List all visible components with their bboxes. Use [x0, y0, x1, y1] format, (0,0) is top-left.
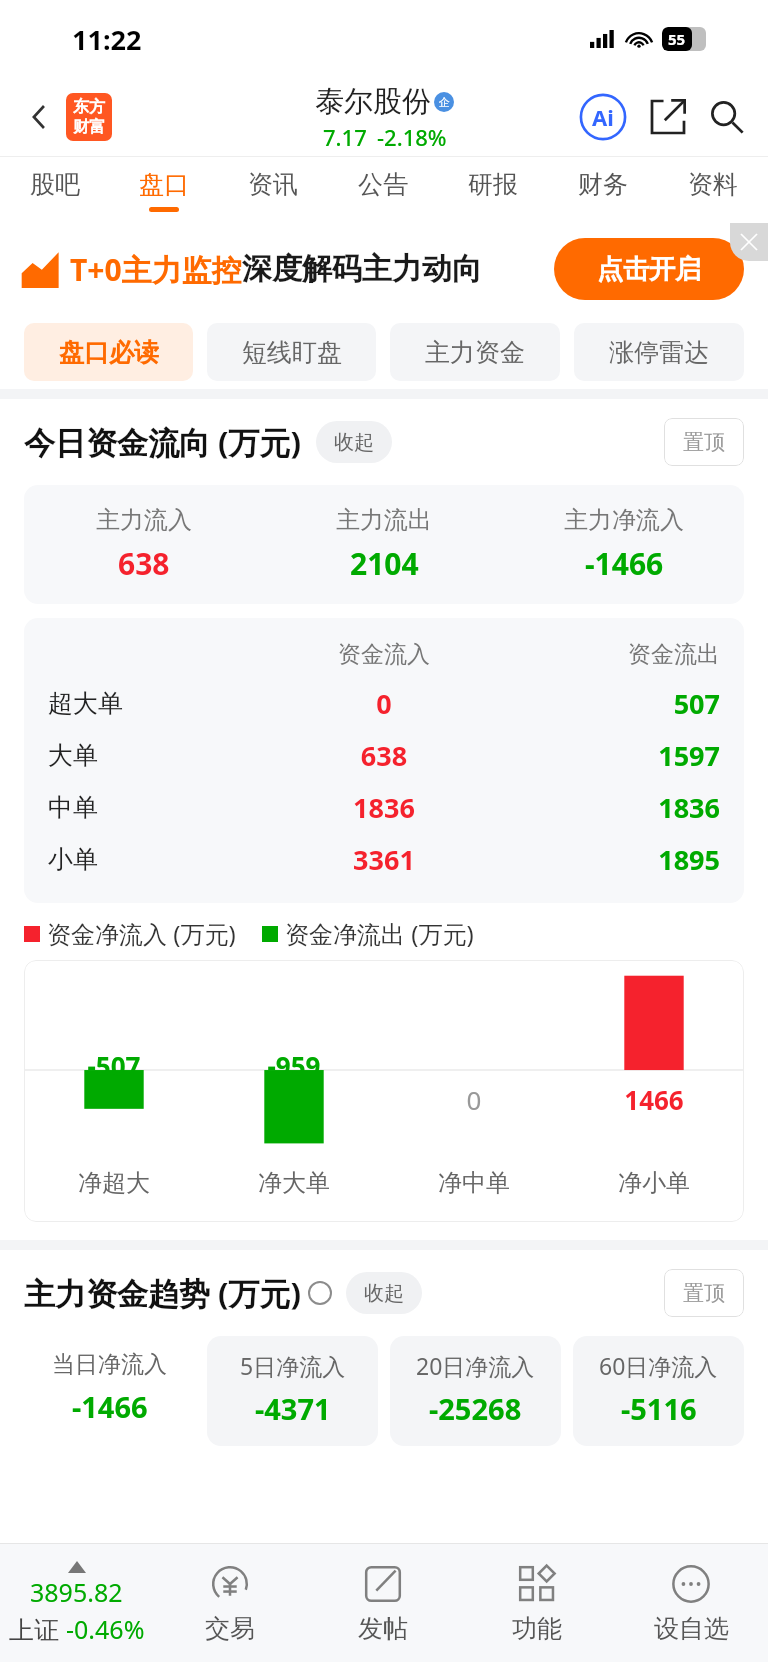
staticText: 1597: [496, 737, 720, 774]
staticText: 置顶: [683, 1280, 725, 1306]
staticText: 3895.82: [30, 1575, 123, 1609]
button[interactable]: 盘口: [109, 157, 218, 223]
button[interactable]: 盘口必读: [24, 323, 193, 381]
staticText: 收起: [334, 430, 374, 455]
button[interactable]: 功能: [460, 1544, 614, 1662]
button[interactable]: Close: [730, 223, 768, 261]
staticText: 资金流入: [272, 640, 496, 669]
staticText: 超大单: [48, 688, 272, 719]
staticText: 2104: [350, 543, 419, 584]
staticText: 1836: [272, 789, 496, 826]
staticText: 收起: [364, 1281, 404, 1306]
staticText: 资讯: [248, 169, 298, 200]
staticText: 今日资金流向 (万元): [24, 421, 302, 463]
staticText: -1466: [72, 1387, 148, 1426]
button[interactable]: Search: [702, 92, 752, 142]
button[interactable]: 点击开启: [554, 238, 744, 300]
staticText: 11:22: [72, 21, 142, 58]
staticText: 研报: [468, 169, 518, 200]
staticText: 上证: [9, 1612, 66, 1646]
button[interactable]: AI assistant: [576, 90, 630, 144]
button[interactable]: 资讯: [218, 157, 328, 223]
staticText: 设自选: [654, 1613, 729, 1644]
button[interactable]: 交易: [153, 1544, 306, 1662]
staticText: 东方: [73, 97, 105, 117]
staticText: 0: [272, 685, 496, 722]
staticText: 1836: [496, 789, 720, 826]
staticText: 507: [496, 685, 720, 722]
staticText: 功能: [512, 1613, 562, 1644]
staticText: -2.18%: [377, 122, 447, 152]
staticText: 资金净流入 (万元): [47, 917, 236, 950]
button[interactable]: 股吧: [0, 157, 109, 223]
button[interactable]: Share: [644, 93, 692, 141]
staticText: 638: [272, 737, 496, 774]
staticText: 主力资金: [425, 337, 525, 368]
button[interactable]: 置顶: [664, 418, 744, 466]
button[interactable]: 涨停雷达: [574, 323, 744, 381]
staticText: -5116: [621, 1389, 697, 1428]
staticText: -1466: [585, 543, 664, 584]
button[interactable]: 财务: [548, 157, 658, 223]
staticText: 7.17: [323, 122, 367, 152]
staticText: 交易: [205, 1613, 255, 1644]
staticText: -4371: [255, 1389, 331, 1428]
staticText: 泰尔股份: [315, 83, 431, 120]
button[interactable]: 超大单: [24, 677, 744, 729]
staticText: 点击开启: [597, 253, 701, 286]
staticText: -25268: [429, 1389, 522, 1428]
staticText: Ai: [592, 102, 614, 132]
staticText: 中单: [48, 792, 272, 823]
staticText: -507: [24, 1048, 204, 1083]
staticText: 主力净流入: [564, 505, 684, 535]
button[interactable]: 3895.82: [0, 1544, 153, 1662]
staticText: 1466: [564, 1082, 744, 1117]
staticText: 深度解码主力动向: [242, 250, 482, 288]
button[interactable]: 当日净流入: [24, 1336, 195, 1446]
button[interactable]: 中单: [24, 781, 744, 833]
staticText: 3361: [272, 841, 496, 878]
staticText: 0: [384, 1082, 564, 1117]
staticText: T+0主力监控: [70, 249, 242, 290]
staticText: 财务: [578, 169, 628, 200]
button[interactable]: 5日净流入: [207, 1336, 378, 1446]
button[interactable]: 主力流入: [24, 505, 744, 584]
button[interactable]: 资料: [658, 157, 768, 223]
button[interactable]: 大单: [24, 729, 744, 781]
button[interactable]: 收起: [316, 421, 392, 463]
staticText: 1895: [496, 841, 720, 878]
staticText: 涨停雷达: [609, 337, 709, 368]
staticText: 60日净流入: [599, 1350, 718, 1381]
staticText: 主力资金趋势 (万元): [24, 1272, 302, 1314]
staticText: 短线盯盘: [242, 337, 342, 368]
staticText: 主力流入: [96, 505, 192, 535]
staticText: 20日净流入: [416, 1350, 535, 1381]
staticText: 主力流出: [336, 505, 432, 535]
staticText: 5日净流入: [240, 1350, 346, 1381]
button[interactable]: 小单: [24, 833, 744, 885]
staticText: 财富: [73, 117, 105, 137]
staticText: 大单: [48, 740, 272, 771]
staticText: 企: [439, 95, 450, 109]
staticText: 净小单: [564, 1168, 744, 1198]
button[interactable]: 研报: [438, 157, 548, 223]
button[interactable]: Back: [18, 95, 62, 139]
staticText: 638: [118, 543, 170, 584]
staticText: 置顶: [683, 429, 725, 455]
button[interactable]: 东方财富: [66, 93, 112, 141]
staticText: 55: [668, 29, 686, 49]
staticText: 资金净流出 (万元): [285, 917, 474, 950]
button[interactable]: 收起: [346, 1272, 422, 1314]
staticText: 净大单: [204, 1168, 384, 1198]
button[interactable]: 主力资金: [390, 323, 560, 381]
button[interactable]: 短线盯盘: [207, 323, 376, 381]
staticText: 净超大: [24, 1168, 204, 1198]
button[interactable]: 设自选: [614, 1544, 768, 1662]
button[interactable]: 20日净流入: [390, 1336, 561, 1446]
button[interactable]: 公告: [328, 157, 438, 223]
button[interactable]: 置顶: [664, 1269, 744, 1317]
staticText: 发帖: [358, 1613, 408, 1644]
button[interactable]: 发帖: [306, 1544, 460, 1662]
staticText: 盘口: [139, 169, 189, 200]
button[interactable]: 60日净流入: [573, 1336, 744, 1446]
